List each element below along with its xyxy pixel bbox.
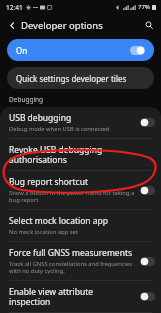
staticText: Show a button in the power menu for taki… [9, 189, 136, 204]
button[interactable]: Quick settings developer tiles [7, 67, 154, 89]
staticText: Debugging [9, 95, 44, 104]
staticText: No mock location app set [9, 228, 78, 236]
staticText: Select mock location app [9, 215, 109, 227]
staticText: USB debugging [9, 112, 72, 124]
staticText: Developer options [21, 19, 103, 32]
staticText: 12:41 [6, 3, 23, 12]
button[interactable]: Back [4, 17, 20, 33]
staticText: Bug report shortcut [9, 176, 88, 188]
button[interactable]: Search [141, 17, 157, 33]
staticText: 77% [138, 3, 150, 11]
button[interactable]: Select mock location app [0, 210, 161, 241]
staticText: Quick settings developer tiles [16, 73, 127, 84]
button[interactable]: Toggle Enable view attribute inspection [140, 292, 155, 301]
staticText: On [16, 45, 28, 56]
button[interactable]: USB debugging [0, 107, 161, 138]
button[interactable]: Force full GNSS measurements [0, 242, 161, 280]
button[interactable]: Toggle USB debugging [140, 118, 155, 127]
staticText: Debug mode when USB is connected [9, 125, 110, 133]
staticText: Revoke USB debugging authorisations [9, 144, 155, 165]
button[interactable]: Revoke USB debugging authorisations [0, 139, 161, 170]
button[interactable]: Enable view attribute inspection [0, 281, 161, 312]
staticText: Enable view attribute inspection [9, 286, 136, 307]
staticText: Force full GNSS measurements [9, 247, 133, 259]
button[interactable]: Bug report shortcut [0, 171, 161, 209]
button[interactable]: Toggle Bug report shortcut [140, 186, 155, 195]
button[interactable]: Toggle Force full GNSS measurements [140, 257, 155, 266]
button[interactable]: On [7, 39, 154, 61]
staticText: Track all GNSS constellations and freque… [9, 260, 136, 275]
